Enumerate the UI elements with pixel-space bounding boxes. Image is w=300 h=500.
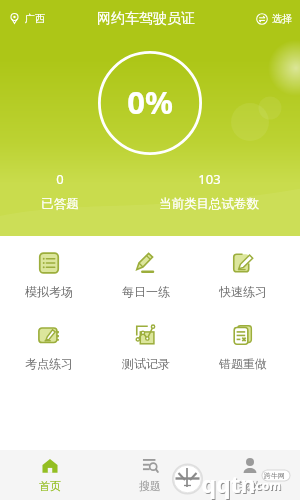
staticText: 103 xyxy=(198,170,221,188)
button[interactable]: 考点练习 xyxy=(0,322,97,373)
button[interactable]: 快速练习 xyxy=(194,250,291,301)
staticText: 0 xyxy=(56,170,64,188)
staticText: 每日一练 xyxy=(122,284,170,299)
staticText: 我的 xyxy=(239,479,261,493)
button[interactable]: 测试记录 xyxy=(97,322,194,373)
staticText: 测试记录 xyxy=(122,356,170,371)
staticText: 模拟考场 xyxy=(25,284,73,299)
button[interactable]: 每日一练 xyxy=(97,250,194,301)
staticText: 选择 xyxy=(272,12,292,25)
staticText: qqtn xyxy=(201,468,256,499)
button[interactable]: 首页 xyxy=(0,450,100,500)
staticText: .com xyxy=(253,478,282,494)
staticText: 广西 xyxy=(25,12,45,25)
button[interactable]: 选择 xyxy=(248,6,300,31)
staticText: 跨牛网 xyxy=(264,471,285,480)
staticText: 首页 xyxy=(39,479,61,493)
button[interactable]: 错题重做 xyxy=(194,322,291,373)
button[interactable]: 我的 xyxy=(200,450,300,500)
staticText: .com xyxy=(252,477,281,493)
staticText: 搜题 xyxy=(139,479,161,493)
staticText: 快速练习 xyxy=(219,284,267,299)
staticText: 当前类目总试卷数 xyxy=(159,196,259,212)
button[interactable]: 模拟考场 xyxy=(0,250,97,301)
staticText: 已答题 xyxy=(41,196,79,212)
staticText: 网约车驾驶员证 xyxy=(97,10,195,28)
button[interactable]: 搜题 xyxy=(100,450,200,500)
button[interactable]: 广西 xyxy=(0,6,53,31)
staticText: 0% xyxy=(127,81,173,123)
staticText: 考点练习 xyxy=(25,356,73,371)
staticText: 错题重做 xyxy=(219,356,267,371)
staticText: qqtn xyxy=(202,469,257,500)
